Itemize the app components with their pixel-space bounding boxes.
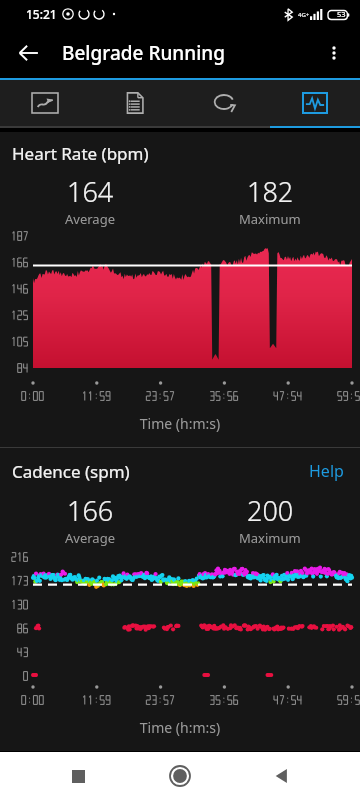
staticText: Cadence (spm) <box>12 460 130 483</box>
button[interactable]: Recents <box>54 752 102 800</box>
staticText: 200 <box>247 492 294 529</box>
staticText: Time (h:m:s) <box>0 414 360 433</box>
staticText: Help <box>309 460 344 482</box>
staticText: 182 <box>247 173 294 210</box>
staticText: Heart Rate (bpm) <box>12 142 149 165</box>
staticText: 53 <box>337 9 346 19</box>
button[interactable]: Laps <box>180 80 270 126</box>
button[interactable]: Map <box>0 80 90 126</box>
staticText: 164 <box>67 173 114 210</box>
button[interactable]: Charts <box>270 80 360 126</box>
staticText: 166 <box>67 492 114 529</box>
staticText: 15:21 <box>26 6 57 22</box>
staticText: Maximum <box>239 210 301 228</box>
button[interactable]: More options <box>312 31 356 75</box>
staticText: Maximum <box>239 529 301 547</box>
staticText: Average <box>65 210 115 228</box>
button[interactable]: Back <box>6 31 50 75</box>
button[interactable]: Details <box>90 80 180 126</box>
button[interactable]: Home <box>156 752 204 800</box>
staticText: Belgrade Running <box>62 40 225 66</box>
staticText: 4G+ <box>298 11 310 19</box>
staticText: Average <box>65 529 115 547</box>
button[interactable]: Help <box>307 458 346 484</box>
button[interactable]: Back <box>258 752 306 800</box>
staticText: Time (h:m:s) <box>0 718 360 737</box>
